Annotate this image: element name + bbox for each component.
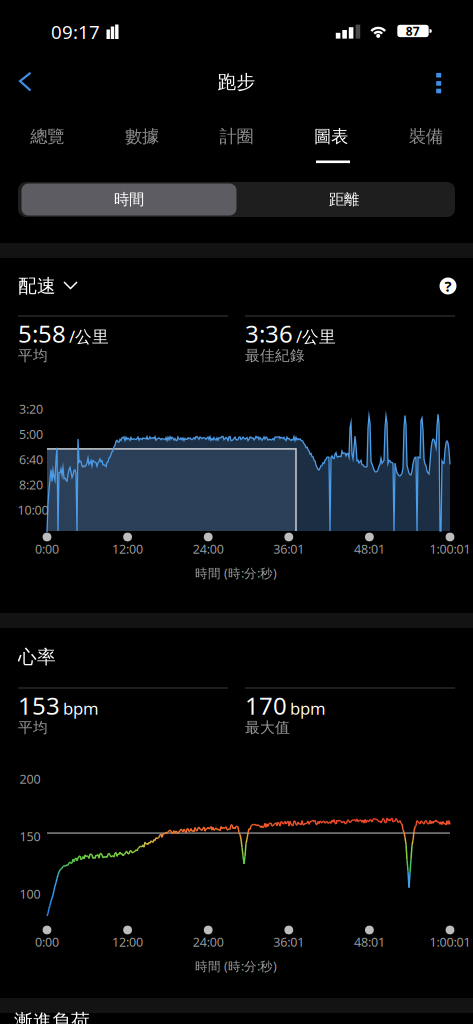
staticText: 數據 — [125, 126, 159, 147]
staticText: 5:00 — [19, 426, 43, 443]
staticText: /公里 — [69, 325, 109, 348]
staticText: 心率 — [18, 645, 56, 668]
staticText: 總覽 — [30, 126, 64, 147]
staticText: 最大值 — [245, 718, 290, 737]
staticText: 0:00 — [35, 933, 59, 951]
staticText: 時間 — [114, 190, 144, 209]
staticText: 150 — [19, 828, 40, 845]
button[interactable]: 裝備 — [378, 110, 473, 162]
button[interactable]: 總覽 — [0, 110, 95, 162]
staticText: 24:00 — [193, 540, 224, 558]
staticText: 10:00 — [17, 501, 48, 519]
staticText: 153 — [18, 689, 60, 722]
staticText: 時間 (時:分:秒) — [195, 564, 277, 582]
button[interactable]: 配速 — [18, 274, 77, 297]
staticText: 0:00 — [35, 540, 59, 558]
staticText: 6:40 — [19, 451, 43, 468]
staticText: 36:01 — [273, 933, 304, 951]
staticText: 圖表 — [314, 126, 348, 147]
button[interactable]: More options — [418, 61, 460, 105]
staticText: 平均 — [18, 346, 48, 365]
staticText: ? — [444, 276, 451, 296]
staticText: 計圈 — [219, 126, 253, 147]
staticText: 100 — [19, 885, 40, 903]
staticText: /公里 — [296, 325, 336, 348]
staticText: 距離 — [329, 190, 359, 209]
staticText: 200 — [19, 770, 40, 788]
staticText: 跑步 — [217, 70, 255, 93]
staticText: 最佳紀錄 — [245, 346, 305, 365]
staticText: 36:01 — [273, 540, 304, 558]
staticText: 8:20 — [19, 476, 43, 493]
staticText: bpm — [290, 697, 326, 720]
staticText: 平均 — [18, 718, 48, 737]
staticText: 裝備 — [409, 126, 443, 147]
staticText: 1:00:01 — [429, 540, 470, 558]
staticText: 12:00 — [112, 933, 143, 951]
staticText: 09:17 — [51, 19, 100, 44]
button[interactable]: 距離 — [236, 183, 451, 215]
staticText: 170 — [245, 689, 287, 722]
button[interactable]: 圖表 — [284, 110, 378, 162]
staticText: 漸進負荷 — [14, 1009, 90, 1024]
staticText: 48:01 — [354, 540, 385, 558]
button[interactable]: Back — [0, 55, 52, 109]
staticText: 87 — [406, 23, 420, 39]
staticText: 配速 — [18, 274, 56, 297]
button[interactable]: Help — [433, 273, 463, 299]
button[interactable]: 數據 — [95, 110, 189, 162]
staticText: bpm — [63, 697, 99, 720]
staticText: 48:01 — [354, 933, 385, 951]
staticText: 12:00 — [112, 540, 143, 558]
staticText: 時間 (時:分:秒) — [195, 957, 277, 975]
staticText: 24:00 — [193, 933, 224, 951]
staticText: 3:36 — [245, 317, 293, 350]
staticText: 5:58 — [18, 317, 66, 350]
button[interactable]: 計圈 — [189, 110, 284, 162]
staticText: 1:00:01 — [429, 933, 470, 951]
button[interactable]: 時間 — [21, 183, 236, 215]
staticText: 3:20 — [19, 400, 43, 418]
